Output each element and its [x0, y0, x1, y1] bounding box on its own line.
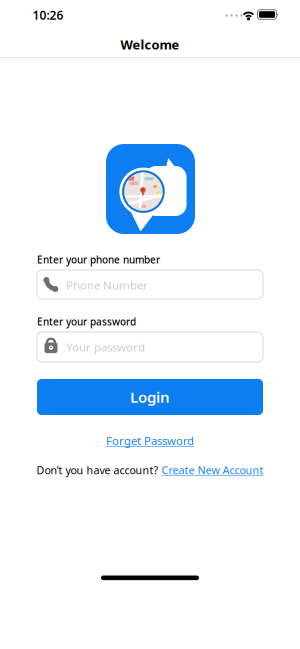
staticText: 10:26 — [32, 7, 63, 23]
button[interactable]: Create New Account — [161, 463, 263, 477]
staticText: Forget Password — [106, 433, 194, 448]
button[interactable]: Your password — [37, 332, 263, 362]
button[interactable]: Forget Password — [106, 433, 194, 448]
staticText: Don't you have account? — [36, 463, 158, 477]
button[interactable]: Phone Number — [37, 270, 263, 299]
staticText: Welcome — [120, 36, 179, 53]
staticText: Phone Number — [66, 277, 148, 293]
staticText: Your password — [66, 339, 145, 355]
staticText: Enter your phone number — [37, 253, 160, 266]
staticText: Login — [130, 387, 170, 407]
staticText: Create New Account — [161, 463, 263, 477]
staticText: Enter your password — [37, 315, 136, 328]
button[interactable]: Login — [37, 379, 263, 415]
